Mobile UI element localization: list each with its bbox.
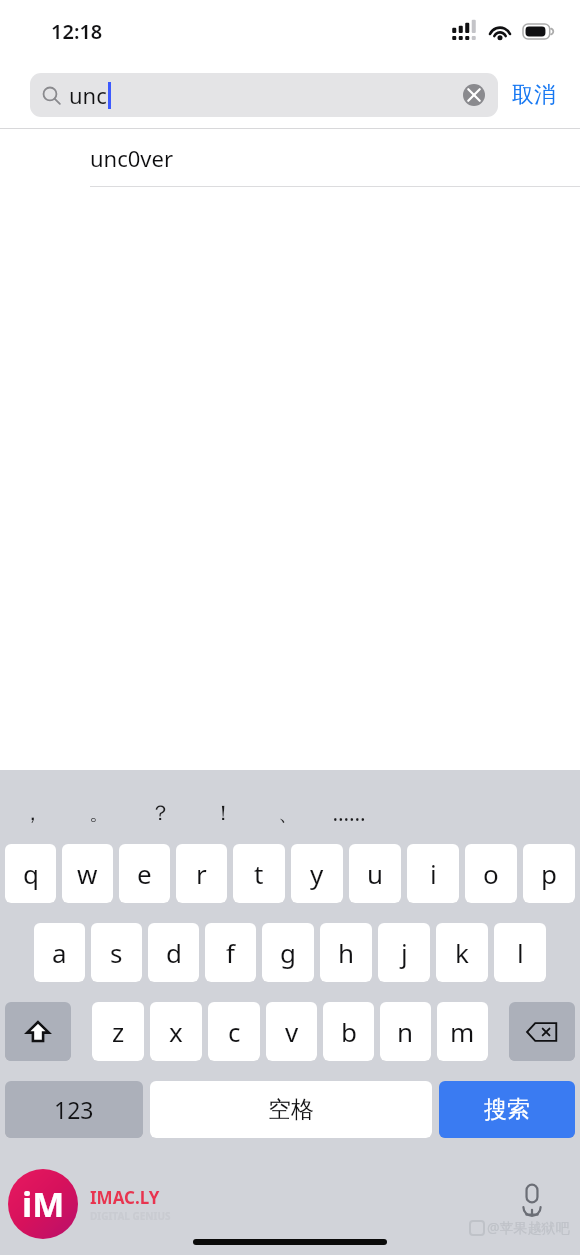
button[interactable]: s (91, 923, 142, 982)
staticText: x (169, 1014, 183, 1049)
button[interactable]: 搜索 (439, 1081, 575, 1138)
button[interactable]: 空格 (150, 1081, 432, 1138)
staticText: v (285, 1014, 299, 1049)
staticText: 123 (54, 1094, 94, 1125)
staticText: w (77, 856, 98, 891)
staticText: t (254, 856, 264, 891)
staticText: 、 (278, 800, 299, 826)
staticText: s (110, 935, 123, 970)
staticText: z (112, 1014, 125, 1049)
button[interactable]: r (176, 844, 227, 903)
button[interactable]: l (494, 923, 546, 982)
button[interactable]: k (436, 923, 488, 982)
staticText: g (280, 935, 296, 970)
staticText: ！ (213, 800, 234, 826)
staticText: h (338, 935, 355, 970)
staticText: r (196, 856, 207, 891)
button[interactable]: m (437, 1002, 488, 1061)
button[interactable]: a (34, 923, 85, 982)
button[interactable]: h (320, 923, 372, 982)
button[interactable]: 。 (75, 792, 123, 834)
button[interactable]: …… (325, 792, 373, 834)
staticText: 搜索 (484, 1095, 530, 1124)
button[interactable]: t (233, 844, 285, 903)
button[interactable]: ！ (199, 792, 247, 834)
button[interactable]: y (291, 844, 343, 903)
button[interactable]: u (349, 844, 401, 903)
button[interactable]: f (205, 923, 256, 982)
button[interactable]: Shift (5, 1002, 71, 1061)
staticText: q (23, 856, 39, 891)
button[interactable]: ， (8, 792, 56, 834)
staticText: c (228, 1014, 241, 1049)
staticText: 。 (89, 800, 110, 826)
staticText: 取消 (512, 81, 556, 109)
staticText: d (166, 935, 182, 970)
staticText: DIGITAL GENIUS (90, 1209, 171, 1223)
button[interactable]: e (119, 844, 170, 903)
staticText: p (541, 856, 557, 891)
staticText: o (483, 856, 499, 891)
button[interactable]: unc (30, 73, 498, 117)
button[interactable]: Dictation (512, 1180, 552, 1220)
button[interactable]: i (407, 844, 459, 903)
button[interactable]: 123 (5, 1081, 143, 1138)
button[interactable]: x (150, 1002, 202, 1061)
staticText: j (401, 935, 408, 970)
button[interactable]: 取消 (512, 73, 556, 117)
button[interactable]: ？ (136, 792, 184, 834)
staticText: y (310, 856, 324, 891)
staticText: ， (22, 800, 43, 826)
button[interactable]: j (378, 923, 430, 982)
staticText: e (137, 856, 152, 891)
button[interactable]: w (62, 844, 113, 903)
staticText: a (52, 935, 67, 970)
staticText: f (226, 935, 235, 970)
staticText: m (450, 1014, 475, 1049)
staticText: n (397, 1014, 414, 1049)
button[interactable]: p (523, 844, 575, 903)
staticText: ？ (150, 800, 171, 826)
button[interactable]: g (262, 923, 314, 982)
staticText: l (517, 935, 524, 970)
staticText: i (430, 856, 437, 891)
staticText: …… (332, 799, 366, 828)
button[interactable]: Clear text (462, 83, 486, 107)
staticText: unc (69, 80, 107, 110)
button[interactable]: d (148, 923, 199, 982)
button[interactable]: o (465, 844, 517, 903)
button[interactable]: v (266, 1002, 317, 1061)
button[interactable]: unc0ver (0, 129, 580, 186)
button[interactable]: 、 (264, 792, 312, 834)
staticText: k (455, 935, 469, 970)
staticText: @苹果越狱吧 (487, 1218, 570, 1237)
button[interactable]: z (92, 1002, 144, 1061)
staticText: u (367, 856, 384, 891)
staticText: 12:18 (51, 18, 103, 45)
button[interactable]: Delete (509, 1002, 575, 1061)
button[interactable]: b (323, 1002, 374, 1061)
staticText: iM (22, 1181, 65, 1227)
button[interactable]: q (5, 844, 56, 903)
staticText: 空格 (268, 1095, 314, 1124)
staticText: IMAC.LY (90, 1186, 160, 1209)
button[interactable]: n (380, 1002, 431, 1061)
staticText: b (341, 1014, 357, 1049)
staticText: unc0ver (90, 143, 174, 173)
button[interactable]: c (208, 1002, 260, 1061)
